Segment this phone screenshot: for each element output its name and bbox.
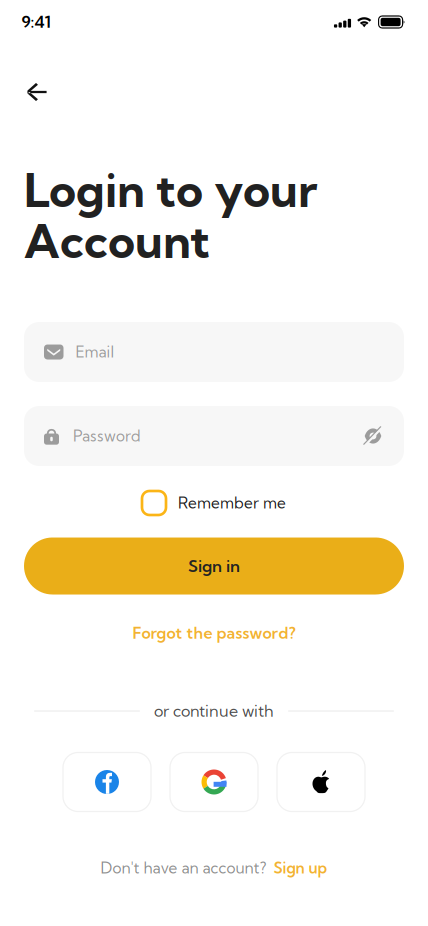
button[interactable]: Continue with Google: [170, 752, 258, 811]
button[interactable]: Remember me: [142, 485, 286, 521]
button[interactable]: Sign up: [273, 858, 327, 877]
staticText: Sign in: [188, 556, 240, 576]
button[interactable]: Sign in: [24, 537, 404, 594]
button[interactable]: Continue with Apple: [277, 752, 365, 811]
staticText: Password: [73, 426, 141, 445]
button[interactable]: Back: [15, 70, 59, 114]
staticText: Account: [24, 212, 210, 270]
staticText: Sign up: [273, 858, 327, 877]
button[interactable]: Password: [23, 406, 343, 466]
staticText: Email: [75, 342, 114, 361]
staticText: Forgot the password?: [132, 623, 295, 643]
button[interactable]: Show password: [351, 406, 395, 466]
button[interactable]: Continue with Facebook: [63, 752, 151, 811]
staticText: Remember me: [178, 493, 286, 512]
button[interactable]: Forgot the password?: [132, 618, 295, 648]
staticText: Don't have an account?: [100, 858, 266, 877]
staticText: or continue with: [154, 701, 274, 721]
staticText: 9:41: [21, 12, 50, 32]
staticText: Login to your: [24, 161, 317, 219]
button[interactable]: Email: [24, 322, 404, 382]
